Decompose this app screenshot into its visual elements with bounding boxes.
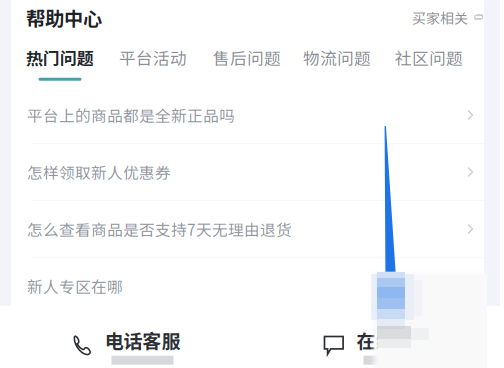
staticText: 平台活动 — [119, 45, 187, 69]
button[interactable]: 平台上的商品都是全新正品吗 — [0, 87, 504, 144]
staticText: 帮助中心 — [26, 4, 102, 31]
button[interactable]: 新人专区在哪 — [0, 258, 504, 315]
staticText: 物流问题 — [303, 45, 371, 69]
staticText: 怎样领取新人优惠券 — [27, 161, 171, 183]
staticText: 社区问题 — [395, 45, 463, 69]
staticText: 热门问题 — [26, 45, 94, 70]
button[interactable]: 平台活动 — [119, 46, 187, 79]
button[interactable]: 售后问题 — [213, 46, 281, 79]
staticText: 在线客服 — [356, 326, 432, 354]
staticText: 电话客服 — [104, 326, 180, 354]
button[interactable]: 热门问题 — [26, 46, 94, 79]
staticText: 买家相关 — [412, 7, 468, 28]
staticText: 怎么查看商品是否支持7天无理由退货 — [27, 218, 292, 240]
button[interactable]: 买家相关 — [412, 7, 484, 28]
button[interactable]: 怎么查看商品是否支持7天无理由退货 — [0, 201, 504, 258]
button[interactable]: 电话客服 — [71, 326, 180, 365]
staticText: 新人专区在哪 — [27, 275, 123, 297]
staticText: 售后问题 — [213, 45, 281, 69]
staticText: 平台上的商品都是全新正品吗 — [27, 104, 235, 126]
button[interactable]: 社区问题 — [395, 46, 463, 79]
button[interactable]: 怎样领取新人优惠券 — [0, 144, 504, 201]
button[interactable]: 在线客服 — [323, 326, 432, 365]
button[interactable]: 物流问题 — [303, 46, 371, 79]
